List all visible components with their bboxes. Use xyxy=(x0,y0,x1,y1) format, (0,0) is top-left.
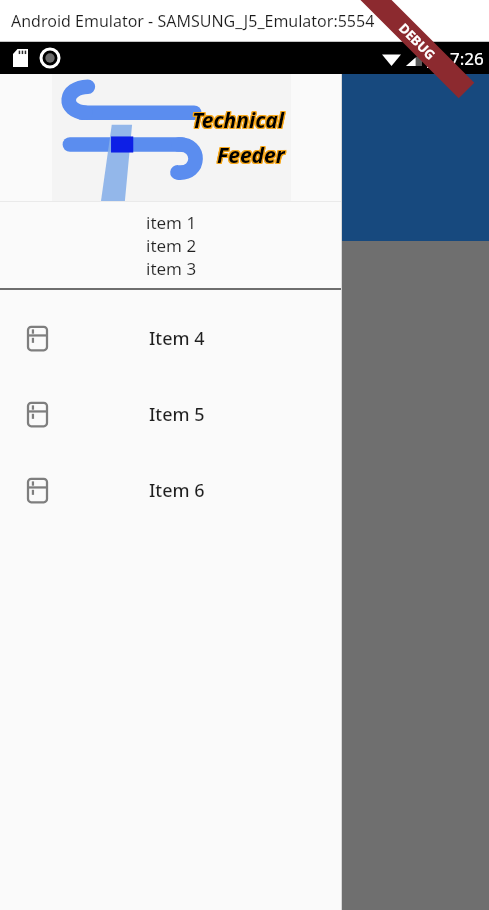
staticText: item 1 xyxy=(146,211,197,234)
staticText: Item 6 xyxy=(149,478,205,503)
staticText: Technical xyxy=(192,107,285,136)
staticText: item 2 xyxy=(146,234,197,257)
other: Refrigerator xyxy=(25,402,50,427)
staticText: DEBUG xyxy=(395,19,440,64)
staticText: item 3 xyxy=(146,257,197,280)
other: Battery xyxy=(427,50,438,68)
other: Refrigerator xyxy=(25,478,50,503)
staticText: Android Emulator - SAMSUNG_J5_Emulator:5… xyxy=(11,10,375,32)
staticText: 7:26 xyxy=(450,47,484,70)
button[interactable]: Refrigerator xyxy=(0,452,342,528)
staticText: Feeder xyxy=(217,141,285,170)
staticText: Technical xyxy=(191,107,284,136)
staticText: Feeder xyxy=(216,141,284,170)
staticText: Feeder xyxy=(216,140,284,169)
staticText: Technical xyxy=(191,105,284,134)
staticText: Technical xyxy=(192,105,285,134)
other: Wi-Fi xyxy=(382,52,401,66)
staticText: Item 5 xyxy=(149,402,205,427)
staticText: Technical xyxy=(193,105,286,134)
staticText: Feeder xyxy=(217,140,285,169)
other: Screen recording xyxy=(41,49,59,67)
staticText: Technical xyxy=(193,106,286,135)
button[interactable]: Refrigerator xyxy=(0,376,342,452)
staticText: Item 4 xyxy=(149,326,205,351)
staticText: Feeder xyxy=(218,140,286,169)
other: SD card xyxy=(13,49,28,67)
other: Mobile signal xyxy=(406,52,422,66)
staticText: Feeder xyxy=(218,142,286,171)
staticText: Feeder xyxy=(217,142,285,171)
button[interactable]: Refrigerator xyxy=(0,300,342,376)
staticText: Feeder xyxy=(216,142,284,171)
other: Refrigerator xyxy=(25,326,50,351)
staticText: Technical xyxy=(192,106,285,135)
staticText: Feeder xyxy=(218,141,286,170)
staticText: Technical xyxy=(191,106,284,135)
staticText: Technical xyxy=(193,107,286,136)
